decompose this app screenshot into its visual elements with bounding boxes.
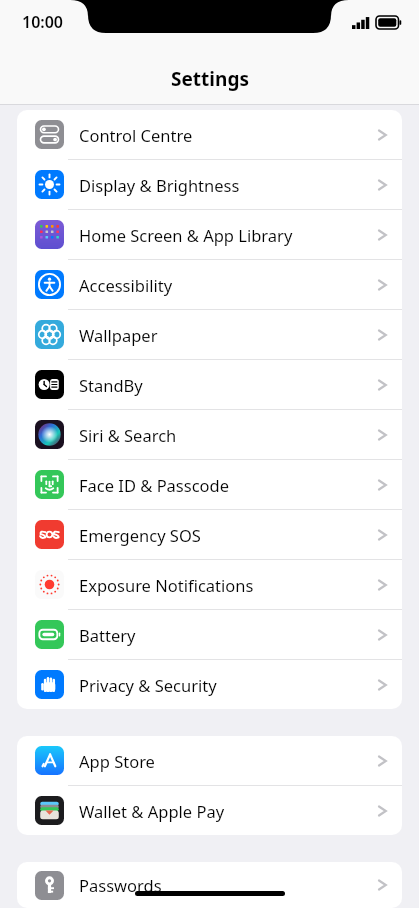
button[interactable]: Privacy & Security: [17, 660, 402, 709]
staticText: Privacy & Security: [79, 674, 217, 696]
button[interactable]: Wallpaper: [17, 310, 402, 359]
staticText: Passwords: [79, 874, 162, 896]
button[interactable]: Emergency SOS: [17, 510, 402, 559]
button[interactable]: Home Screen & App Library: [17, 210, 402, 259]
button[interactable]: Siri & Search: [17, 410, 402, 459]
staticText: Emergency SOS: [79, 524, 201, 546]
button[interactable]: StandBy: [17, 360, 402, 409]
button[interactable]: Accessibility: [17, 260, 402, 309]
button[interactable]: Display & Brightness: [17, 160, 402, 209]
staticText: StandBy: [79, 374, 143, 396]
staticText: 10:00: [22, 11, 64, 33]
button[interactable]: Battery: [17, 610, 402, 659]
staticText: Wallet & Apple Pay: [79, 800, 225, 822]
staticText: Control Centre: [79, 124, 193, 146]
staticText: Home Screen & App Library: [79, 224, 293, 246]
button[interactable]: Passwords: [17, 862, 402, 908]
staticText: Face ID & Passcode: [79, 474, 230, 496]
staticText: Display & Brightness: [79, 174, 240, 196]
button[interactable]: Face ID & Passcode: [17, 460, 402, 509]
staticText: Exposure Notifications: [79, 574, 254, 596]
staticText: Settings: [171, 66, 249, 92]
staticText: Siri & Search: [79, 424, 177, 446]
button[interactable]: Control Centre: [17, 110, 402, 159]
staticText: App Store: [79, 750, 155, 772]
staticText: Accessibility: [79, 274, 173, 296]
staticText: Wallpaper: [79, 324, 158, 346]
button[interactable]: App Store: [17, 736, 402, 785]
button[interactable]: Exposure Notifications: [17, 560, 402, 609]
staticText: Battery: [79, 624, 136, 646]
button[interactable]: Wallet & Apple Pay: [17, 786, 402, 835]
